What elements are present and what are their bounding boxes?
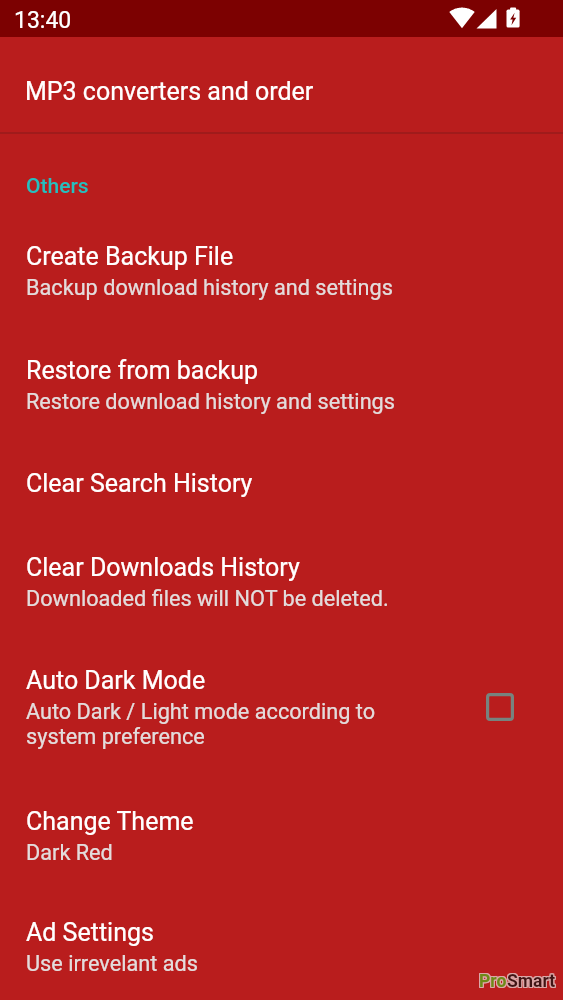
staticText: Use irrevelant ads xyxy=(26,951,198,976)
staticText: Pro xyxy=(478,971,506,992)
button[interactable]: Change Theme xyxy=(0,779,563,890)
staticText: Auto Dark Mode xyxy=(26,666,206,695)
staticText: MP3 converters and order xyxy=(25,77,314,106)
button[interactable]: Create Backup File xyxy=(0,214,563,328)
button[interactable]: Clear Downloads History xyxy=(0,525,563,638)
staticText: Downloaded files will NOT be deleted. xyxy=(26,586,389,611)
button[interactable]: Auto Dark Mode checkbox, off xyxy=(478,685,522,729)
staticText: Auto Dark / Light mode according to syst… xyxy=(26,699,376,749)
staticText: Clear Downloads History xyxy=(26,553,300,582)
staticText: Smart xyxy=(506,972,555,993)
staticText: Change Theme xyxy=(26,807,194,836)
staticText: Restore download history and settings xyxy=(26,389,395,414)
staticText: Clear Search History xyxy=(26,469,253,498)
staticText: Backup download history and settings xyxy=(26,275,393,300)
staticText: Pro xyxy=(478,970,506,991)
staticText: Pro xyxy=(479,971,507,992)
staticText: 13:40 xyxy=(14,7,72,34)
staticText: Smart xyxy=(508,970,557,991)
button[interactable]: Auto Dark Mode xyxy=(0,638,563,779)
other: Wi-Fi, mobile signal and battery status xyxy=(0,0,563,37)
staticText: Create Backup File xyxy=(26,242,234,271)
staticText: Pro xyxy=(478,972,506,993)
staticText: Smart xyxy=(506,971,555,992)
staticText: Others xyxy=(26,174,89,199)
staticText: Smart xyxy=(508,971,557,992)
staticText: Pro xyxy=(480,972,508,993)
staticText: Pro xyxy=(480,970,508,991)
staticText: Dark Red xyxy=(26,840,113,865)
button[interactable]: Restore from backup xyxy=(0,328,563,441)
button[interactable]: Ad Settings xyxy=(0,890,563,1000)
staticText: Pro xyxy=(480,971,508,992)
staticText: Smart xyxy=(507,972,556,993)
staticText: Pro xyxy=(479,972,507,993)
staticText: Restore from backup xyxy=(26,356,258,385)
button[interactable]: Clear Search History xyxy=(0,441,563,525)
staticText: Smart xyxy=(507,971,556,992)
staticText: Smart xyxy=(507,970,556,991)
staticText: Smart xyxy=(506,970,555,991)
staticText: Smart xyxy=(508,972,557,993)
button[interactable]: MP3 converters and order xyxy=(0,37,563,132)
staticText: Ad Settings xyxy=(26,918,154,947)
staticText: Pro xyxy=(479,970,507,991)
